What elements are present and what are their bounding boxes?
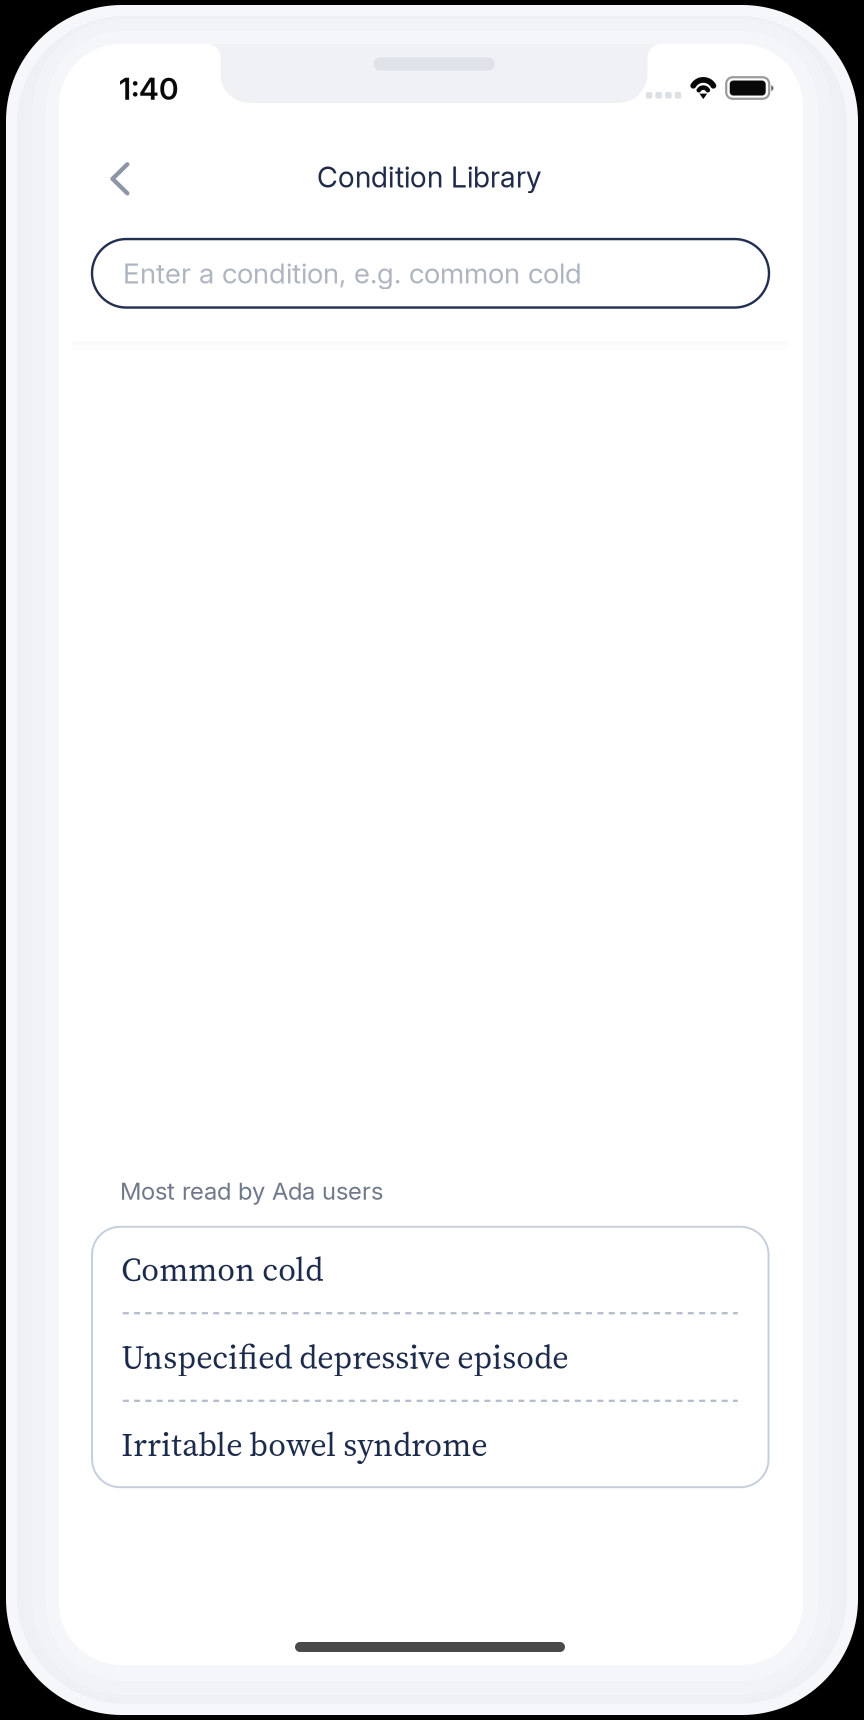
button[interactable]: Unspecified depressive episode (92, 1314, 769, 1400)
staticText: 1:40 (119, 71, 178, 107)
staticText: Irritable bowel syndrome (121, 1422, 487, 1467)
button[interactable]: Common cold (92, 1227, 769, 1312)
staticText: Most read by Ada users (120, 1176, 383, 1205)
button[interactable]: Back (91, 150, 149, 208)
staticText: Condition Library (317, 160, 541, 194)
staticText: Unspecified depressive episode (121, 1335, 568, 1379)
staticText: Common cold (121, 1247, 323, 1292)
button[interactable]: Irritable bowel syndrome (92, 1402, 769, 1487)
button[interactable]: Enter a condition, e.g. common cold (92, 239, 769, 308)
staticText: Enter a condition, e.g. common cold (123, 256, 582, 290)
